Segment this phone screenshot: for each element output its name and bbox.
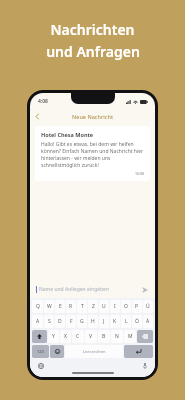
staticText: 4:08 — [38, 98, 48, 105]
staticText: L — [125, 318, 128, 325]
staticText: U — [102, 303, 106, 310]
staticText: D — [58, 318, 62, 325]
button[interactable]: Q — [32, 300, 43, 313]
staticText: 123 — [37, 349, 44, 354]
staticText: N — [115, 333, 119, 340]
button[interactable]: O — [121, 300, 131, 313]
button[interactable]: Umschalt — [32, 330, 47, 343]
button[interactable]: H — [88, 315, 98, 328]
staticText: E — [59, 303, 62, 310]
staticText: Nachrichten — [50, 20, 135, 39]
staticText: S — [48, 318, 51, 325]
staticText: X — [64, 333, 67, 340]
button[interactable]: E — [55, 300, 65, 313]
staticText: Q — [36, 303, 40, 310]
button[interactable]: B — [98, 330, 110, 343]
button[interactable]: Sprache — [36, 361, 45, 370]
staticText: O — [124, 303, 128, 310]
button[interactable]: Name und Anliegen eingeben — [36, 285, 149, 294]
staticText: K — [113, 318, 117, 325]
staticText: 16:08 — [135, 171, 144, 176]
button[interactable]: V — [85, 330, 97, 343]
button[interactable]: Ö — [132, 315, 142, 328]
button[interactable]: G — [77, 315, 87, 328]
button[interactable]: F — [66, 315, 76, 328]
button[interactable]: S — [44, 315, 54, 328]
button[interactable]: C — [72, 330, 84, 343]
button[interactable]: P — [132, 300, 142, 313]
staticText: Ö — [135, 318, 139, 325]
staticText: T — [81, 303, 84, 310]
button[interactable]: Senden — [140, 285, 149, 294]
staticText: Ü — [146, 303, 150, 310]
staticText: J — [103, 318, 105, 325]
staticText: C — [76, 333, 80, 340]
button[interactable]: N — [111, 330, 123, 343]
staticText: I — [114, 303, 116, 310]
staticText: Hotel Chesa Monte — [41, 131, 94, 138]
button[interactable]: Zahlen — [32, 345, 49, 358]
button[interactable]: Z — [88, 300, 98, 313]
button[interactable]: W — [44, 300, 54, 313]
button[interactable]: A — [32, 315, 43, 328]
staticText: Name und Anliegen eingeben — [39, 286, 140, 293]
staticText: P — [135, 303, 139, 310]
button[interactable]: R — [66, 300, 76, 313]
button[interactable]: X — [60, 330, 71, 343]
button[interactable]: M — [124, 330, 136, 343]
button[interactable]: Löschen — [137, 330, 153, 343]
button[interactable]: K — [110, 315, 120, 328]
staticText: und Anfragen — [46, 42, 140, 61]
staticText: Leerzeichen — [83, 349, 106, 354]
button[interactable]: Leerzeichen — [65, 345, 123, 358]
staticText: Ä — [146, 318, 150, 325]
staticText: F — [70, 318, 73, 325]
button[interactable]: Ä — [143, 315, 153, 328]
staticText: A — [36, 318, 40, 325]
staticText: V — [89, 333, 93, 340]
staticText: B — [102, 333, 106, 340]
button[interactable]: Zurück — [30, 109, 44, 123]
button[interactable]: I — [110, 300, 120, 313]
staticText: W — [47, 303, 52, 310]
button[interactable]: Diktieren — [140, 361, 149, 370]
button[interactable]: J — [99, 315, 109, 328]
button[interactable]: Eingabe — [124, 345, 153, 358]
button[interactable]: U — [99, 300, 109, 313]
button[interactable]: Emoji — [50, 345, 64, 358]
button[interactable]: Ü — [143, 300, 153, 313]
staticText: Neue Nachricht — [72, 113, 114, 120]
button[interactable]: Hotel Chesa Monte — [35, 126, 150, 181]
staticText: Hallo! Gibt es etwas, bei dem wir helfen… — [41, 141, 144, 169]
staticText: G — [80, 318, 84, 325]
staticText: Y — [52, 333, 55, 340]
button[interactable]: D — [55, 315, 65, 328]
button[interactable]: L — [121, 315, 131, 328]
staticText: Z — [92, 303, 95, 310]
button[interactable]: Y — [48, 330, 59, 343]
button[interactable]: T — [77, 300, 87, 313]
staticText: M — [128, 333, 133, 340]
staticText: R — [69, 303, 73, 310]
staticText: H — [91, 318, 95, 325]
